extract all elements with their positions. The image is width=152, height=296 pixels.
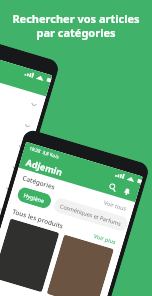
staticText: Rechercher vos articles par catégories [0, 11, 152, 40]
staticText: Adjemin [25, 156, 64, 178]
button[interactable]: Cosmétiques et Parfums [52, 197, 129, 233]
button[interactable]: Hygiène [16, 186, 53, 210]
staticText: Catégories [21, 173, 57, 192]
staticText: Cosmétiques et Parfums [59, 202, 123, 227]
staticText: Voir tous [103, 199, 127, 212]
button[interactable] [0, 218, 59, 292]
button[interactable] [46, 234, 114, 296]
staticText: Tous les produits [11, 207, 65, 231]
button[interactable]: Search [105, 180, 120, 195]
staticText: 18:28 3,8 Ko/s [29, 145, 60, 159]
button[interactable]: Notifications [120, 184, 134, 199]
staticText: Hygiène [23, 191, 46, 204]
staticText: Voir plus [93, 232, 117, 245]
